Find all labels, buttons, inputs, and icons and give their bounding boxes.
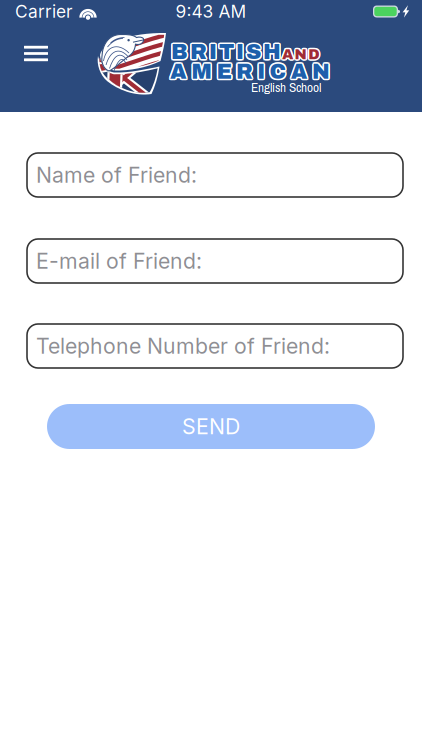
staticText: Telephone Number of Friend: <box>36 333 330 359</box>
staticText: R <box>191 39 208 62</box>
staticText: T <box>220 41 235 65</box>
staticText: E <box>215 60 230 83</box>
staticText: I <box>211 40 219 63</box>
staticText: E <box>218 60 233 83</box>
staticText: I <box>236 39 244 62</box>
staticText: I <box>258 61 266 84</box>
staticText: I <box>256 60 264 83</box>
staticText: R <box>236 60 253 83</box>
staticText: E <box>218 59 233 82</box>
staticText: A <box>168 60 185 83</box>
staticText: I <box>208 39 216 62</box>
staticText: I <box>256 61 264 84</box>
staticText: D <box>308 48 319 64</box>
staticText: I <box>235 41 243 65</box>
staticText: T <box>218 39 233 62</box>
staticText: S <box>245 41 260 65</box>
staticText: T <box>219 40 234 63</box>
staticText: N <box>312 62 330 85</box>
staticText: R <box>191 41 208 65</box>
staticText: I <box>207 40 215 63</box>
staticText: D <box>308 45 319 61</box>
staticText: S <box>245 39 260 62</box>
staticText: D <box>310 46 321 62</box>
staticText: D <box>307 46 318 62</box>
staticText: I <box>257 60 265 83</box>
staticText: R <box>188 40 205 63</box>
staticText: D <box>307 47 318 63</box>
staticText: B <box>171 40 188 63</box>
staticText: SEND <box>182 414 240 439</box>
staticText: N <box>311 59 329 82</box>
staticText: S <box>246 39 261 62</box>
staticText: N <box>293 45 305 61</box>
staticText: E <box>217 58 232 82</box>
staticText: M <box>192 59 213 82</box>
staticText: N <box>313 59 331 82</box>
staticText: A <box>282 48 293 64</box>
staticText: I <box>258 59 266 82</box>
staticText: M <box>192 61 213 84</box>
staticText: M <box>193 60 214 83</box>
staticText: M <box>190 61 211 84</box>
staticText: C <box>268 61 285 84</box>
staticText: A <box>280 46 291 62</box>
staticText: T <box>219 39 234 62</box>
staticText: A <box>171 59 188 82</box>
staticText: N <box>310 60 328 83</box>
staticText: M <box>190 60 211 83</box>
button[interactable]: Menu <box>12 31 60 75</box>
staticText: C <box>269 60 286 83</box>
staticText: D <box>309 47 320 63</box>
staticText: E <box>215 61 230 84</box>
staticText: N <box>295 45 307 61</box>
staticText: I <box>208 41 216 65</box>
staticText: I <box>256 59 264 82</box>
staticText: R <box>235 61 252 84</box>
staticText: A <box>292 59 309 82</box>
button[interactable]: SEND <box>47 404 375 449</box>
staticText: A <box>171 61 188 84</box>
staticText: I <box>236 40 244 63</box>
staticText: N <box>311 61 329 84</box>
staticText: I <box>209 40 217 63</box>
staticText: I <box>209 42 217 65</box>
staticText: I <box>238 40 246 63</box>
staticText: D <box>308 46 319 62</box>
staticText: E <box>217 62 232 85</box>
staticText: A <box>283 45 294 61</box>
staticText: T <box>221 40 236 63</box>
staticText: B <box>170 41 187 65</box>
staticText: C <box>271 60 288 83</box>
staticText: R <box>237 61 254 84</box>
staticText: T <box>217 40 232 63</box>
staticText: R <box>234 60 251 83</box>
staticText: N <box>296 45 308 61</box>
staticText: M <box>191 62 212 85</box>
staticText: E-mail of Friend: <box>36 248 202 274</box>
staticText: A <box>172 60 189 83</box>
staticText: H <box>265 40 283 63</box>
staticText: M <box>191 58 212 82</box>
staticText: E <box>218 61 233 84</box>
staticText: S <box>244 40 259 63</box>
staticText: R <box>235 59 252 82</box>
staticText: A <box>281 45 292 61</box>
staticText: M <box>191 60 212 83</box>
staticText: A <box>291 60 308 83</box>
staticText: I <box>234 40 242 63</box>
staticText: R <box>189 41 206 65</box>
staticText: A <box>290 59 307 82</box>
staticText: R <box>236 62 253 85</box>
staticText: T <box>218 41 233 65</box>
staticText: N <box>312 58 330 82</box>
staticText: D <box>309 45 320 61</box>
staticText: R <box>190 40 207 63</box>
staticText: A <box>169 61 186 84</box>
staticText: N <box>314 60 332 83</box>
staticText: B <box>172 41 189 65</box>
staticText: C <box>268 59 285 82</box>
staticText: I <box>237 39 245 62</box>
staticText: B <box>172 39 189 62</box>
staticText: S <box>247 41 262 65</box>
